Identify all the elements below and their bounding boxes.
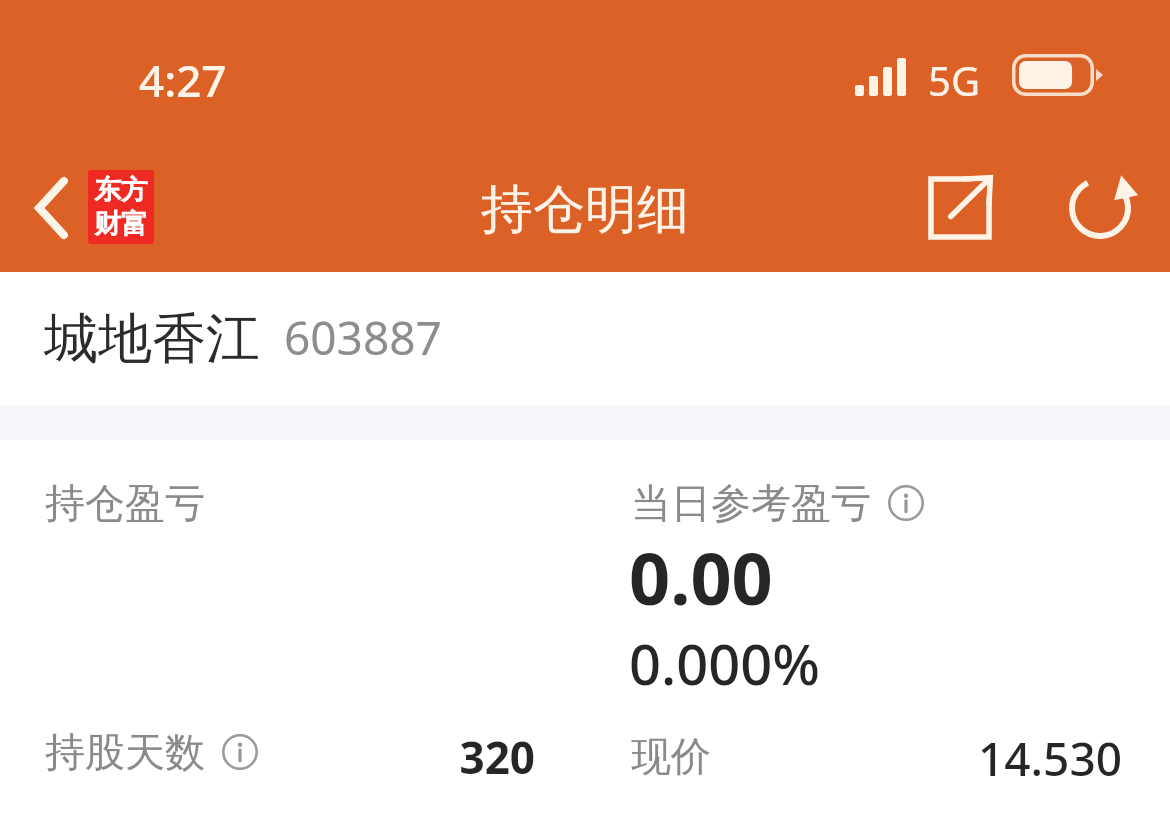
staticText: 4:27 (139, 50, 227, 110)
staticText: 持股天数 (45, 727, 205, 777)
staticText: 城地香江 (44, 305, 260, 373)
button[interactable]: Info (219, 731, 261, 773)
staticText: 持仓盈亏 (45, 478, 205, 528)
button[interactable]: 城地香江 (0, 272, 1170, 405)
button[interactable]: Back (14, 160, 90, 256)
staticText: 0.00 (629, 528, 773, 626)
staticText: 当日参考盈亏 (631, 478, 871, 528)
staticText: 14.530 (977, 727, 1122, 790)
staticText: 东方 (94, 173, 148, 207)
button[interactable]: 东方 (88, 170, 154, 244)
staticText: 0.000% (629, 625, 821, 701)
staticText: 现价 (631, 731, 711, 781)
staticText: 320 (459, 727, 535, 787)
button[interactable]: Info (885, 482, 927, 524)
staticText: 持仓明细 (0, 177, 1170, 243)
staticText: 财富 (94, 207, 148, 241)
button[interactable]: Share (908, 158, 1012, 258)
staticText: 603887 (284, 306, 442, 369)
button[interactable]: Refresh (1048, 158, 1152, 258)
staticText: 5G (928, 53, 980, 107)
